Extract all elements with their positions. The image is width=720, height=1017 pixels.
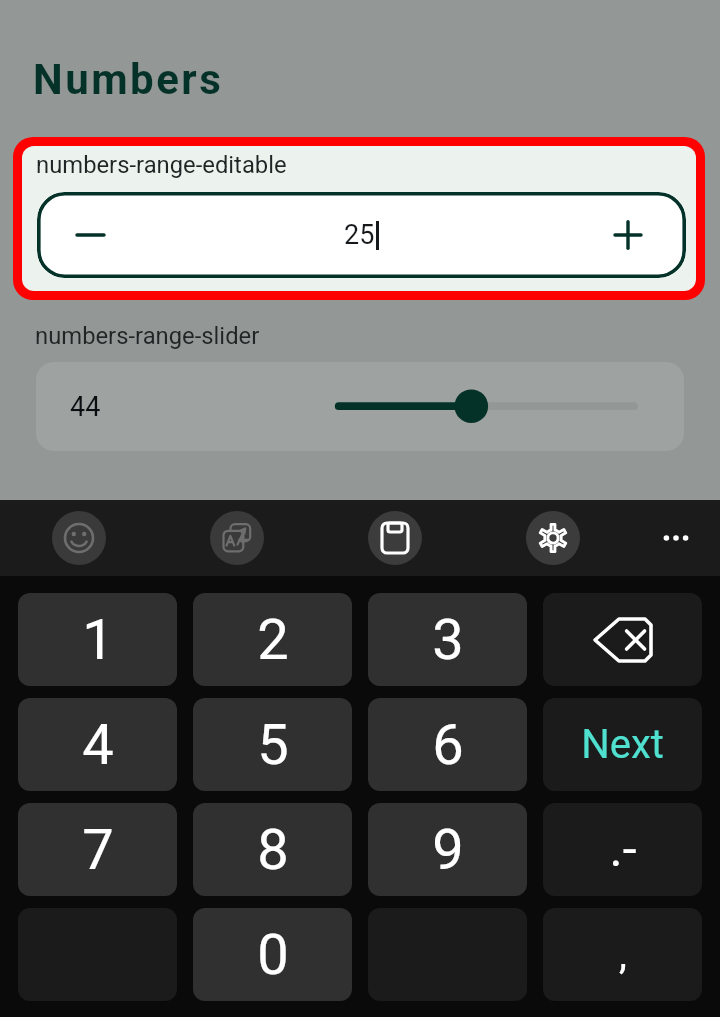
staticText: 0 (257, 922, 289, 988)
staticText: 5 (257, 712, 289, 778)
staticText: 7 (82, 817, 114, 883)
staticText: .- (609, 820, 637, 879)
button[interactable]: Backspace (543, 593, 702, 686)
button[interactable]: .- (543, 803, 702, 896)
button[interactable]: Emoji (52, 511, 106, 565)
staticText: 8 (257, 817, 289, 883)
staticText: 2 (257, 607, 289, 673)
button[interactable]: Translate (210, 511, 264, 565)
button[interactable]: 4 (18, 698, 177, 791)
button[interactable]: 5 (193, 698, 352, 791)
button[interactable]: 7 (18, 803, 177, 896)
staticText: 9 (432, 817, 464, 883)
button[interactable]: Next (543, 698, 702, 791)
button[interactable]: 2 (193, 593, 352, 686)
staticText: 4 (82, 712, 114, 778)
staticText: 25 (344, 219, 375, 251)
staticText: 3 (432, 607, 464, 673)
button[interactable]: 0 (193, 908, 352, 1001)
button[interactable]: 6 (368, 698, 527, 791)
staticText: 6 (432, 712, 464, 778)
button[interactable]: 9 (368, 803, 527, 896)
staticText: numbers-range-editable (36, 151, 287, 179)
button[interactable]: Clipboard (368, 511, 422, 565)
button[interactable]: More options (649, 511, 703, 565)
staticText: , (619, 931, 627, 978)
button[interactable]: , (543, 908, 702, 1001)
staticText: numbers-range-slider (35, 322, 260, 350)
staticText: Numbers (33, 55, 224, 104)
button[interactable]: 25 (37, 192, 686, 278)
button[interactable]: 8 (193, 803, 352, 896)
staticText: 44 (70, 391, 101, 423)
staticText: 1 (82, 607, 114, 673)
button[interactable]: 3 (368, 593, 527, 686)
button[interactable]: 1 (18, 593, 177, 686)
button[interactable]: 44 (36, 362, 684, 451)
button[interactable]: Settings (526, 511, 580, 565)
staticText: Next (581, 721, 664, 768)
